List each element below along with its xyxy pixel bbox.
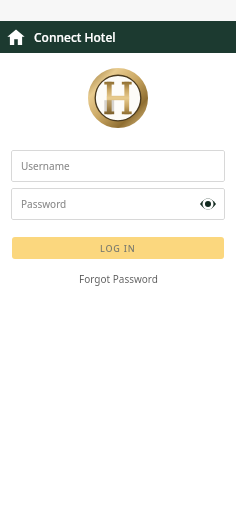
button[interactable]: LOG IN bbox=[12, 237, 224, 259]
button[interactable]: Show password bbox=[198, 194, 218, 214]
staticText: Forgot Password bbox=[79, 272, 158, 286]
button[interactable]: Home bbox=[7, 28, 25, 46]
staticText: Connect Hotel bbox=[34, 29, 116, 45]
button[interactable]: Password bbox=[11, 188, 225, 220]
button[interactable]: Username bbox=[11, 150, 225, 182]
button[interactable]: Forgot Password bbox=[73, 270, 164, 288]
staticText: Password bbox=[21, 197, 67, 211]
staticText: Username bbox=[21, 159, 70, 173]
staticText: LOG IN bbox=[100, 242, 136, 254]
